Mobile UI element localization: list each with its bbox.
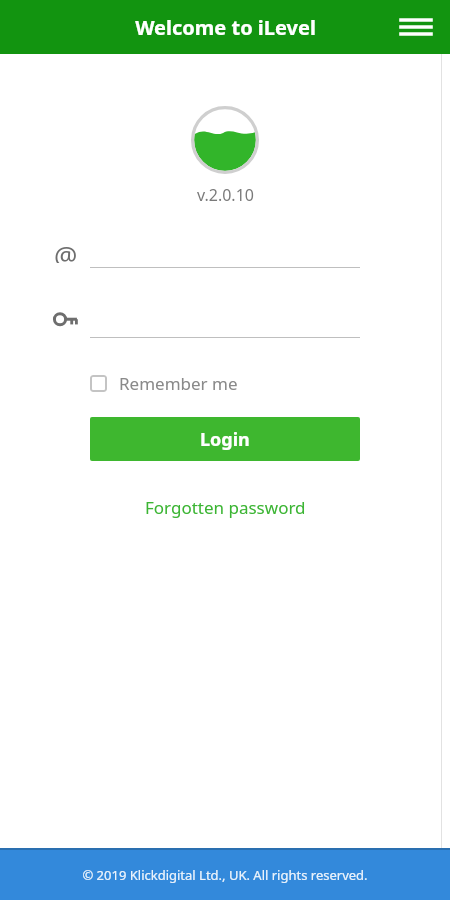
staticText: Remember me [119, 372, 238, 395]
staticText: © 2019 Klickdigital Ltd., UK. All rights… [82, 866, 368, 884]
button[interactable]: Forgotten password [145, 496, 306, 519]
button[interactable]: Remember me [90, 366, 360, 400]
button[interactable]: @ [50, 232, 360, 268]
staticText: Forgotten password [145, 496, 306, 519]
button[interactable]: Login [90, 417, 360, 461]
button[interactable]: Menu [394, 5, 438, 49]
staticText: @ [54, 237, 78, 263]
staticText: Login [200, 427, 250, 452]
button[interactable] [50, 302, 360, 338]
staticText: v.2.0.10 [197, 184, 254, 206]
staticText: Welcome to iLevel [135, 14, 316, 41]
